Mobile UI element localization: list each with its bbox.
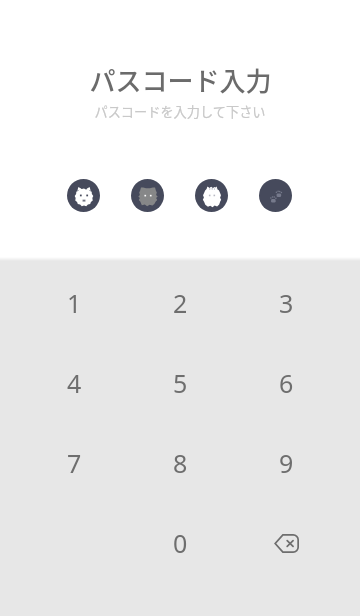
button[interactable]: 6: [233, 343, 339, 423]
button[interactable]: 7: [21, 423, 127, 503]
button[interactable]: 2: [127, 263, 233, 343]
staticText: 1: [67, 286, 82, 320]
button[interactable]: 0: [127, 503, 233, 583]
other: Passcode character: [195, 179, 228, 212]
other: Passcode character: [259, 179, 292, 212]
staticText: 0: [173, 526, 188, 560]
other: Passcode character: [131, 179, 164, 212]
button[interactable]: 1: [21, 263, 127, 343]
staticText: 4: [67, 366, 82, 400]
button[interactable]: 4: [21, 343, 127, 423]
staticText: 2: [173, 286, 188, 320]
button[interactable]: 3: [233, 263, 339, 343]
staticText: 5: [173, 366, 188, 400]
other: Passcode character: [67, 179, 100, 212]
staticText: 9: [279, 446, 294, 480]
button[interactable]: Backspace: [233, 503, 339, 583]
button[interactable]: 5: [127, 343, 233, 423]
button[interactable]: 8: [127, 423, 233, 503]
staticText: 8: [173, 446, 188, 480]
button[interactable]: 9: [233, 423, 339, 503]
staticText: 7: [67, 446, 82, 480]
staticText: パスコード入力: [89, 61, 272, 97]
staticText: パスコードを入力して下さい: [94, 102, 266, 121]
staticText: 3: [279, 286, 294, 320]
staticText: 6: [279, 366, 294, 400]
other: Backspace: [274, 534, 299, 553]
